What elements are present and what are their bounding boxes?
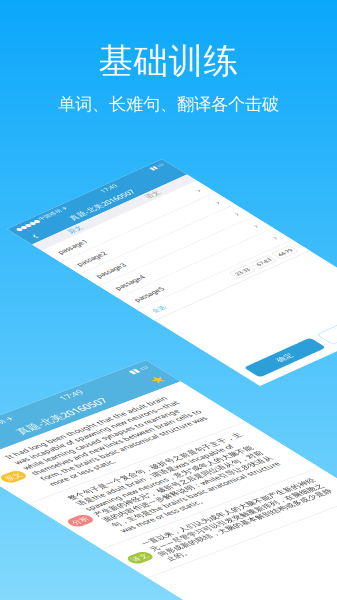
button[interactable]: Favorite [220, 464, 240, 498]
staticText: 67-83 [236, 534, 263, 548]
button[interactable]: passage4 [7, 436, 327, 479]
staticText: ▮▮ ▭ [293, 234, 318, 246]
staticText: It had long been thought that the adult … [0, 508, 223, 593]
staticText: ●●●●● 中国移动 ✈ [16, 233, 120, 246]
staticText: 23-33 [192, 534, 219, 548]
staticText: passage3 [22, 405, 80, 423]
staticText: 单词、长难句、翻译各个击破 [58, 94, 279, 115]
button[interactable]: passage5 [7, 479, 327, 522]
button[interactable]: passage2 [7, 350, 327, 393]
staticText: › [307, 445, 312, 468]
staticText: › [307, 316, 312, 339]
button[interactable]: passage3 [7, 393, 327, 436]
staticText: ★ [221, 470, 239, 492]
staticText: passage5 [22, 491, 80, 509]
staticText: ●●●●● 中国移动 ✈ [0, 446, 42, 459]
staticText: ▮▮ ▭ [215, 447, 240, 459]
staticText: › [307, 488, 312, 511]
staticText: passage4 [22, 448, 80, 466]
staticText: 真题-北美20160507 [24, 471, 153, 491]
button[interactable]: 23-33 [188, 531, 224, 551]
staticText: 真题-北美20160507 [102, 258, 231, 278]
staticText: 基础训练 [98, 40, 238, 83]
button[interactable]: 原文 [7, 279, 167, 313]
button[interactable]: passage1 [7, 307, 327, 350]
staticText: › [307, 359, 312, 382]
staticText: 17:49 [113, 445, 144, 461]
